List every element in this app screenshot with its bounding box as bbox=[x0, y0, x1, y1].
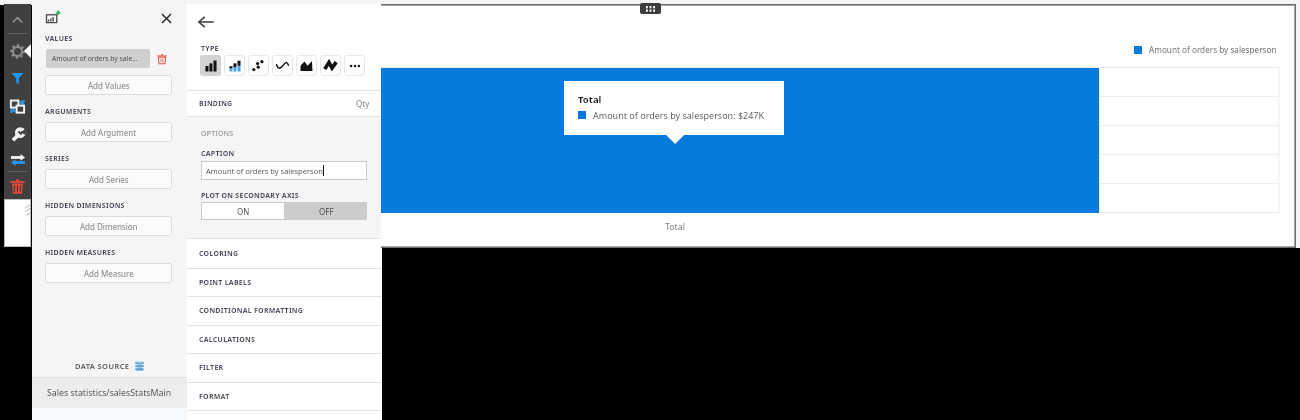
button[interactable]: Line chart bbox=[272, 55, 293, 76]
staticText: Amount of orders by salesperson bbox=[1149, 44, 1277, 55]
button[interactable]: Drag handle bbox=[640, 3, 661, 14]
button[interactable]: FILTER bbox=[199, 353, 382, 382]
staticText: CALCULATIONS bbox=[199, 335, 256, 345]
button[interactable]: BINDING bbox=[199, 91, 370, 116]
button[interactable]: Amount of orders by salesperson bbox=[201, 161, 367, 180]
staticText: Amount of orders by salesperson: $247K bbox=[593, 109, 765, 121]
button[interactable]: Layers bbox=[4, 92, 31, 120]
staticText: OPTIONS bbox=[201, 129, 234, 139]
button[interactable]: Collapse panel bbox=[4, 10, 31, 30]
button[interactable]: Spline chart bbox=[320, 55, 341, 76]
button[interactable]: Add chart bbox=[46, 10, 62, 24]
staticText: FILTER bbox=[199, 363, 224, 373]
button[interactable]: Stacked bar chart bbox=[224, 55, 245, 76]
button[interactable]: Remove value bbox=[155, 52, 168, 65]
staticText: Add Series bbox=[89, 174, 129, 185]
button[interactable]: CONDITIONAL FORMATTING bbox=[199, 296, 382, 325]
button[interactable]: Add Measure bbox=[45, 263, 172, 283]
button[interactable]: Add Series bbox=[45, 169, 172, 189]
button[interactable]: DATA SOURCE bbox=[32, 354, 187, 378]
staticText: Add Measure bbox=[84, 268, 134, 279]
button[interactable]: OFF bbox=[285, 202, 367, 220]
button[interactable]: Close bbox=[160, 12, 173, 25]
staticText: VALUES bbox=[45, 34, 73, 44]
staticText: TYPE bbox=[201, 44, 219, 54]
button[interactable]: Tools bbox=[4, 121, 31, 149]
button[interactable]: Area chart bbox=[296, 55, 317, 76]
staticText: CONDITIONAL FORMATTING bbox=[199, 306, 304, 316]
staticText: Add Values bbox=[88, 80, 130, 91]
staticText: Amount of orders by salesperson bbox=[206, 166, 323, 176]
staticText: FORMAT bbox=[199, 392, 230, 402]
button[interactable]: FORMAT bbox=[199, 382, 382, 411]
button[interactable]: Bar chart bbox=[200, 55, 221, 76]
staticText: SERIES bbox=[45, 154, 70, 164]
staticText: Sales statistics/salesStatsMain bbox=[47, 387, 172, 399]
staticText: Add Dimension bbox=[80, 221, 138, 232]
staticText: Total bbox=[578, 93, 602, 106]
button[interactable]: Back bbox=[198, 15, 214, 29]
staticText: PLOT ON SECONDARY AXIS bbox=[201, 191, 299, 201]
button[interactable]: Scatter chart bbox=[248, 55, 269, 76]
button[interactable]: Amount of orders by sale… bbox=[46, 49, 150, 68]
staticText: CAPTION bbox=[201, 149, 235, 159]
button[interactable]: Delete bbox=[4, 172, 31, 200]
button[interactable]: Add Argument bbox=[45, 122, 172, 142]
staticText: Amount of orders by sale… bbox=[52, 54, 138, 63]
button[interactable]: Arguments tab bbox=[4, 199, 31, 247]
staticText: DATA SOURCE bbox=[75, 361, 130, 371]
button[interactable]: Amount of orders by salesperson bbox=[1134, 44, 1277, 55]
button[interactable]: Swap axes bbox=[4, 146, 31, 174]
staticText: HIDDEN DIMENSIONS bbox=[45, 201, 125, 211]
button[interactable]: Sales statistics/salesStatsMain bbox=[32, 378, 187, 408]
staticText: HIDDEN MEASURES bbox=[45, 248, 116, 258]
staticText: BINDING bbox=[199, 99, 233, 109]
button[interactable]: Settings bbox=[4, 37, 31, 65]
button[interactable]: POINT LABELS bbox=[199, 268, 382, 297]
staticText: ARGUMENTS bbox=[45, 107, 92, 117]
button[interactable]: More chart types bbox=[344, 55, 365, 76]
staticText: OFF bbox=[319, 206, 334, 217]
button[interactable]: COLORING bbox=[199, 239, 382, 268]
staticText: COLORING bbox=[199, 249, 239, 259]
staticText: Add Argument bbox=[81, 127, 137, 138]
staticText: POINT LABELS bbox=[199, 278, 252, 288]
staticText: ON bbox=[237, 206, 250, 217]
button[interactable]: Add Values bbox=[45, 75, 172, 95]
staticText: Qty bbox=[356, 98, 370, 109]
staticText: Total bbox=[665, 221, 685, 233]
button[interactable]: ON bbox=[201, 202, 285, 220]
button[interactable]: Filter bbox=[4, 64, 31, 92]
button[interactable]: Add Dimension bbox=[45, 216, 172, 236]
button[interactable]: CALCULATIONS bbox=[199, 325, 382, 354]
